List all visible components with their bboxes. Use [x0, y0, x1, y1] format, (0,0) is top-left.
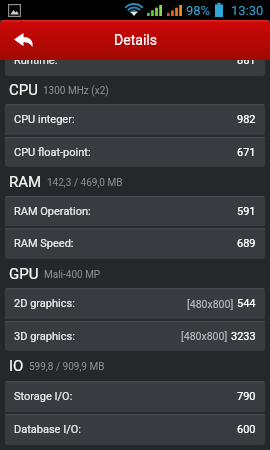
staticText: 2D graphics: — [14, 297, 75, 310]
staticText: CPU float-point: — [14, 146, 91, 159]
staticText: [480x800] — [181, 330, 228, 342]
staticText: Details — [114, 32, 157, 48]
staticText: 142,3 / 469,0 MB — [47, 177, 123, 189]
staticText: 790 — [237, 390, 256, 403]
staticText: RAM — [9, 173, 42, 191]
staticText: CPU — [9, 81, 38, 99]
button[interactable]: 3D graphics: — [5, 321, 265, 351]
staticText: Mali-400 MP — [44, 269, 101, 281]
button[interactable]: CPU integer: — [5, 104, 265, 135]
button[interactable]: Back — [0, 20, 46, 60]
button[interactable]: Runtime: — [5, 60, 265, 76]
staticText: 13:30 — [231, 3, 264, 18]
staticText: RAM Speed: — [14, 237, 74, 250]
staticText: 3D graphics: — [14, 330, 75, 343]
staticText: 671 — [237, 146, 256, 159]
staticText: CPU integer: — [14, 113, 75, 126]
staticText: IO — [9, 357, 24, 375]
staticText: 599,8 / 909,9 MB — [29, 361, 105, 373]
staticText: [480x800] — [187, 298, 234, 310]
button[interactable]: Database I/O: — [5, 414, 265, 445]
staticText: Storage I/O: — [14, 390, 73, 403]
staticText: 982 — [237, 113, 256, 126]
staticText: Database I/O: — [14, 423, 81, 436]
staticText: 689 — [237, 237, 256, 250]
staticText: 591 — [237, 205, 256, 218]
staticText: 544 — [237, 297, 256, 310]
staticText: Runtime: — [14, 60, 58, 67]
staticText: RAM Operation: — [14, 205, 91, 218]
button[interactable]: 2D graphics: — [5, 288, 265, 319]
staticText: 861 — [237, 60, 256, 67]
button[interactable]: CPU float-point: — [5, 137, 265, 167]
staticText: 3233 — [231, 330, 256, 343]
button[interactable]: RAM Speed: — [5, 228, 265, 259]
button[interactable]: Storage I/O: — [5, 381, 265, 412]
staticText: 600 — [237, 423, 256, 436]
staticText: 98% — [186, 3, 211, 18]
button[interactable]: RAM Operation: — [5, 196, 265, 226]
staticText: 1300 MHz (x2) — [43, 85, 109, 97]
staticText: GPU — [9, 265, 39, 283]
